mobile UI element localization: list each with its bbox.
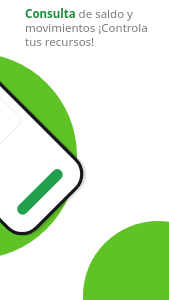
staticText: Consulta de saldo y movimientos ¡Control…	[25, 6, 160, 49]
